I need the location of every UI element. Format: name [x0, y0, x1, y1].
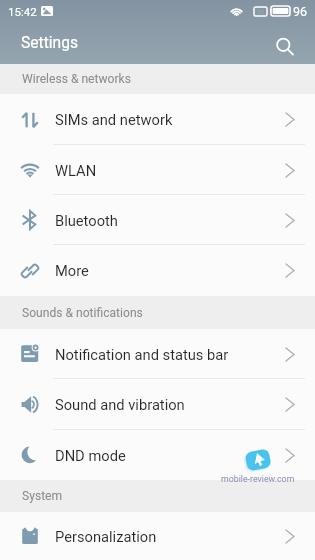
staticText: Wireless & networks — [22, 72, 131, 86]
staticText: System — [22, 489, 63, 503]
button[interactable]: Personalization — [0, 512, 315, 560]
staticText: DND mode — [55, 447, 126, 464]
button[interactable]: Notification and status bar — [0, 329, 315, 379]
button[interactable]: More — [0, 245, 315, 296]
staticText: Sounds & notifications — [22, 306, 143, 320]
staticText: Personalization — [55, 528, 157, 545]
button[interactable]: Bluetooth — [0, 195, 315, 245]
staticText: mobile-review.com — [221, 474, 295, 484]
staticText: 96 — [293, 4, 308, 19]
staticText: Bluetooth — [55, 212, 118, 229]
staticText: WLAN — [55, 162, 97, 179]
button[interactable]: WLAN — [0, 145, 315, 195]
staticText: SIMs and network — [55, 111, 173, 128]
staticText: Notification and status bar — [55, 346, 229, 363]
button[interactable]: Search — [265, 26, 302, 63]
button[interactable]: SIMs and network — [0, 94, 315, 145]
staticText: Sound and vibration — [55, 396, 185, 413]
button[interactable]: Sound and vibration — [0, 379, 315, 430]
staticText: 15:42 — [8, 5, 37, 18]
button[interactable]: DND mode — [0, 430, 315, 480]
staticText: More — [55, 262, 89, 279]
staticText: Settings — [21, 34, 78, 52]
